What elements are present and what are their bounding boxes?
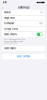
button[interactable]: Device Sensors <box>37 33 43 36</box>
staticText: General <box>4 11 10 14</box>
staticText: Sound Volume <box>4 47 16 50</box>
staticText: On <box>40 11 43 14</box>
staticText: Usage Limits <box>4 17 15 19</box>
button[interactable]: Storage Status <box>2 26 45 32</box>
staticText: ‹ <box>2 6 3 9</box>
button[interactable]: General <box>2 10 45 15</box>
staticText: Notification <box>4 22 14 25</box>
staticText: Controls how much data this app can use … <box>4 38 25 44</box>
button[interactable]: Reset Settings <box>2 54 45 59</box>
button[interactable]: Back <box>0 5 5 10</box>
staticText: Auto <box>39 22 43 25</box>
button[interactable]: Notification <box>2 21 45 26</box>
staticText: Settings <box>18 6 29 9</box>
button[interactable]: Sound Volume <box>2 46 45 51</box>
staticText: Storage Status <box>4 28 18 30</box>
button[interactable]: Usage Limits <box>2 15 45 21</box>
staticText: Reset Settings <box>17 55 30 58</box>
staticText: 9:41 <box>2 1 6 4</box>
staticText: Device Sensors <box>4 33 17 36</box>
